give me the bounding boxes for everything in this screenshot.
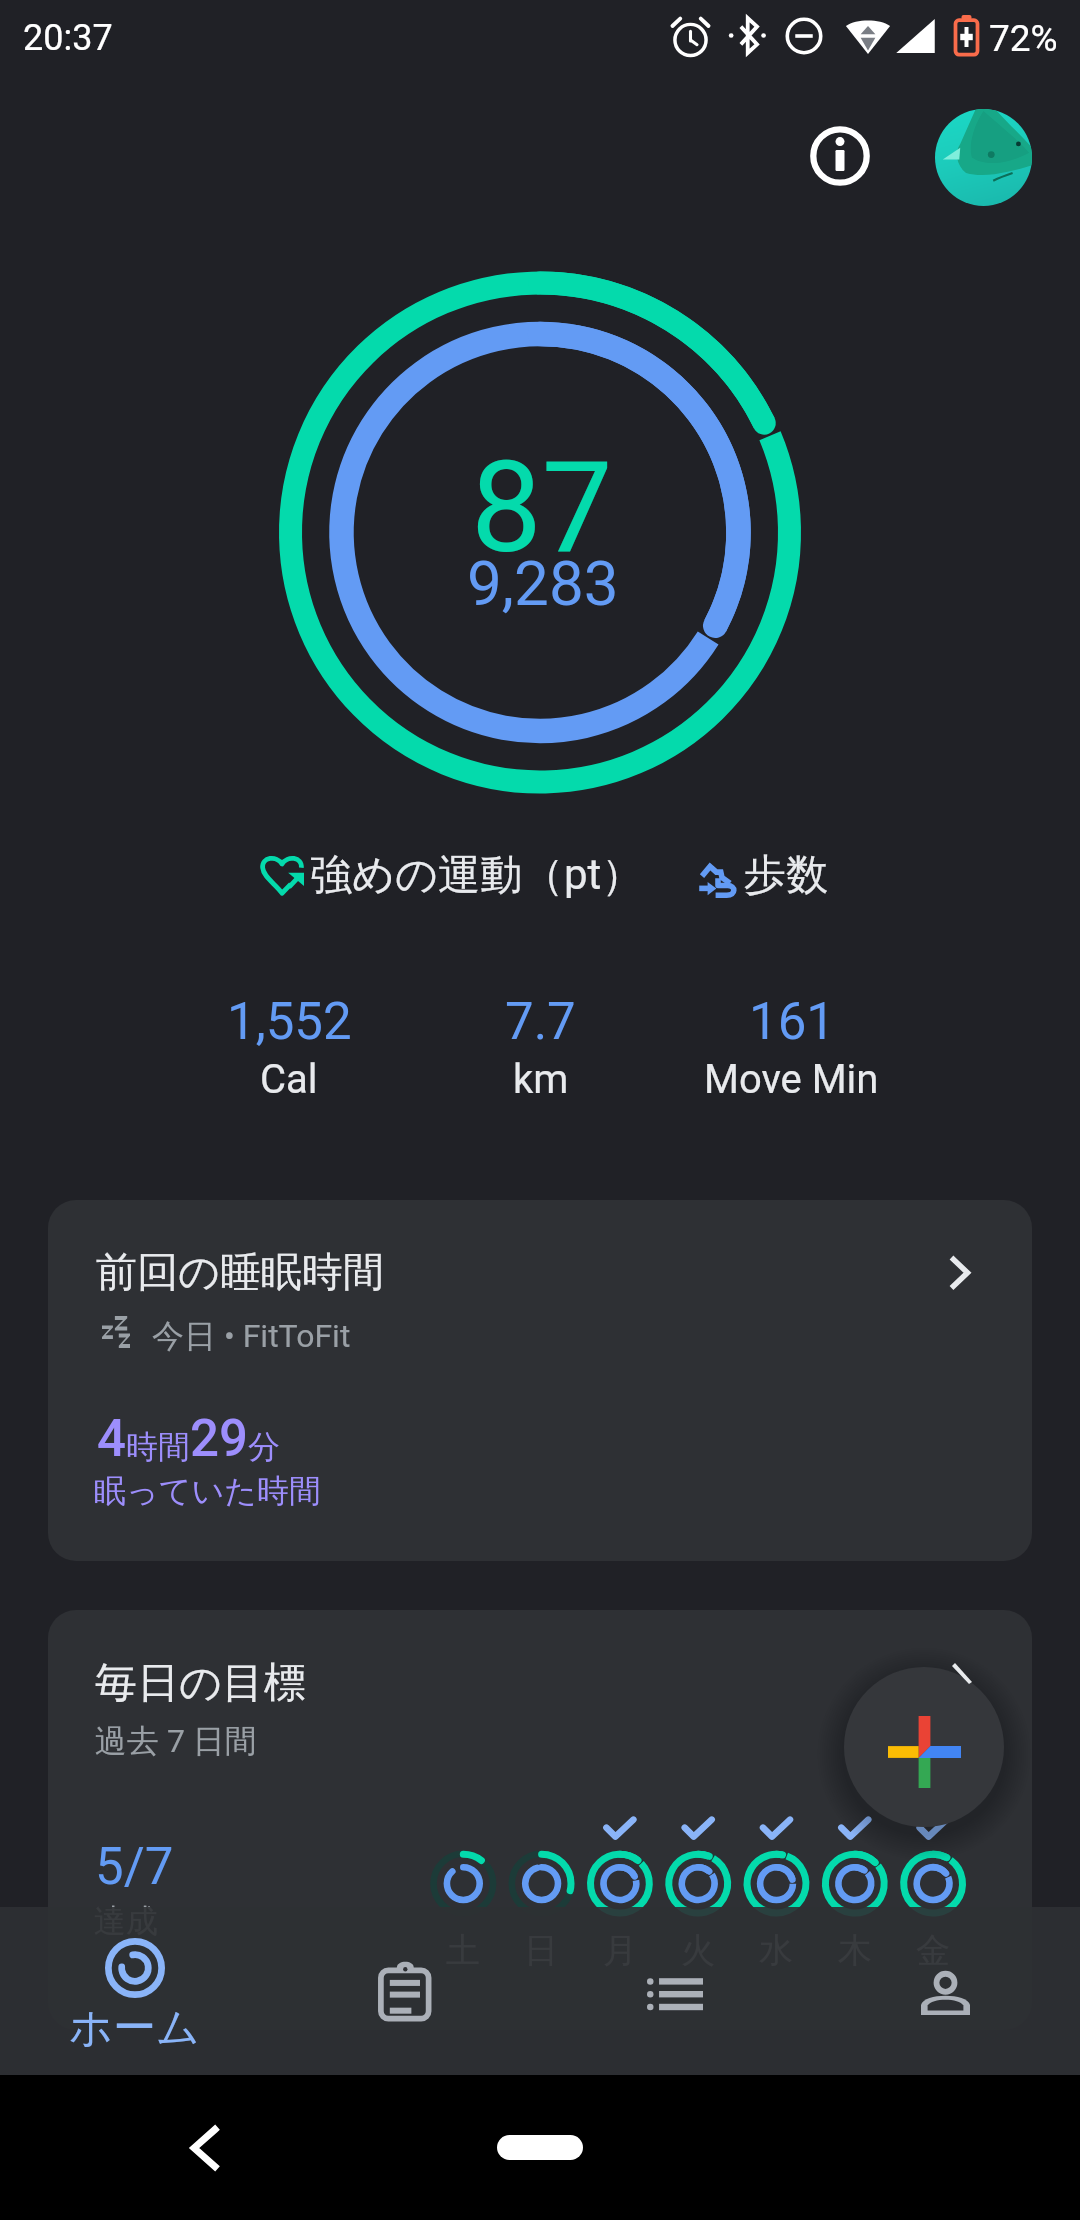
staticText: 火 <box>681 1929 715 1972</box>
button[interactable]: 前回の睡眠時間 <box>48 1200 1032 1561</box>
staticText: 毎日の目標 <box>95 1657 306 1710</box>
staticText: 7.7 <box>505 992 576 1052</box>
button[interactable]: Home <box>497 2135 583 2160</box>
staticText: 87 <box>471 434 613 582</box>
staticText: 強めの運動（pt） <box>310 849 644 902</box>
staticText: 日 <box>524 1929 558 1972</box>
staticText: Cal <box>260 1056 318 1103</box>
staticText: 29 <box>190 1409 248 1469</box>
button[interactable]: Profile <box>935 109 1032 206</box>
staticText: 金 <box>916 1929 950 1972</box>
staticText: 4 <box>97 1409 126 1469</box>
staticText: 20:37 <box>23 17 113 59</box>
staticText: 72% <box>989 17 1058 60</box>
button[interactable]: Info <box>792 108 888 204</box>
staticText: 時間 <box>126 1427 190 1467</box>
staticText: 歩数 <box>744 849 828 902</box>
staticText: 土 <box>446 1929 480 1972</box>
staticText: 1,552 <box>227 992 352 1052</box>
button[interactable]: 毎日の目標 <box>48 1610 1032 2030</box>
button[interactable]: Add activity <box>844 1667 1004 1827</box>
staticText: 161 <box>749 992 835 1052</box>
button[interactable]: Steps <box>690 845 774 911</box>
staticText: ホーム <box>69 2001 201 2055</box>
staticText: 木 <box>838 1929 872 1972</box>
other: Back <box>191 2127 217 2169</box>
staticText: 過去 7 日間 <box>95 1721 257 1761</box>
button[interactable]: 1,552 <box>163 992 415 1103</box>
button[interactable]: Heart points <box>250 845 584 911</box>
staticText: 月 <box>603 1929 637 1972</box>
staticText: km <box>513 1056 569 1103</box>
staticText: 眠っていた時間 <box>94 1471 321 1511</box>
staticText: 9,283 <box>467 547 619 620</box>
button[interactable]: 161 <box>666 992 917 1103</box>
staticText: 5/7 <box>95 1837 174 1897</box>
staticText: 分 <box>248 1427 280 1467</box>
button[interactable]: Profile <box>810 1907 1080 2075</box>
button[interactable]: Browse <box>540 1907 810 2075</box>
button[interactable]: 7.7 <box>415 992 666 1103</box>
staticText: Move Min <box>704 1056 879 1103</box>
staticText: 達成 <box>94 1901 158 1941</box>
button[interactable]: Journal <box>270 1907 540 2075</box>
staticText: 前回の睡眠時間 <box>96 1247 384 1299</box>
staticText: 水 <box>759 1929 793 1972</box>
staticText: 今日 • FitToFit <box>152 1316 351 1356</box>
button[interactable]: ホーム <box>0 1907 270 2075</box>
